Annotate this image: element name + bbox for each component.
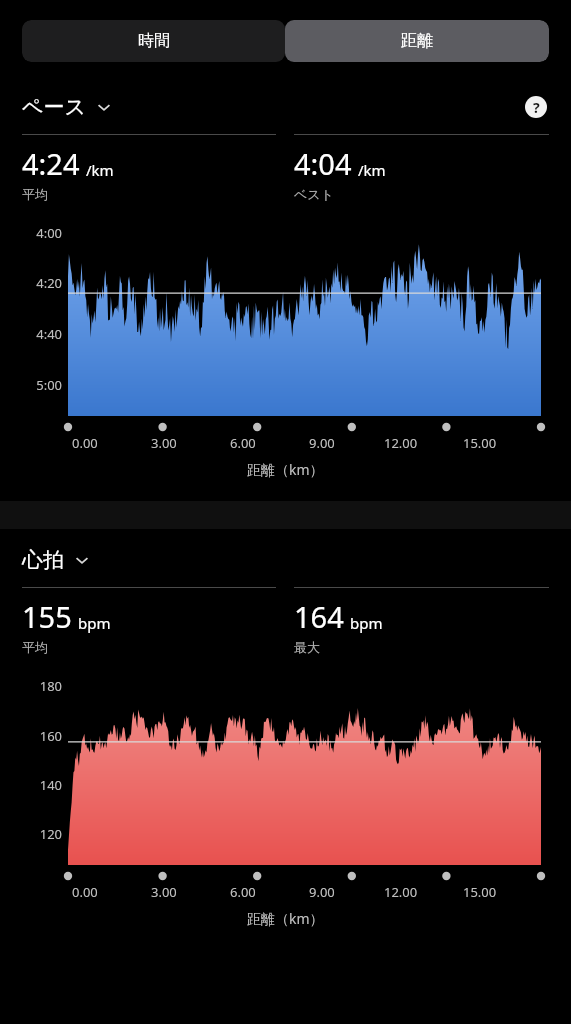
staticText: 15.00 — [463, 883, 497, 901]
staticText: 0.00 — [72, 883, 98, 901]
staticText: 3.00 — [151, 883, 177, 901]
staticText: 9.00 — [309, 883, 335, 901]
staticText: 155 — [22, 597, 72, 636]
button[interactable]: 心拍 — [22, 547, 90, 573]
staticText: 15.00 — [463, 434, 497, 452]
staticText: ベスト — [294, 186, 334, 202]
staticText: ? — [533, 98, 540, 117]
staticText: 12.00 — [384, 434, 418, 452]
staticText: ペース — [22, 94, 86, 120]
staticText: 4:40 — [36, 325, 62, 343]
staticText: 4:20 — [36, 274, 62, 292]
staticText: 9.00 — [309, 434, 335, 452]
staticText: 160 — [39, 727, 62, 745]
button[interactable]: 距離 — [285, 20, 549, 62]
staticText: 120 — [39, 825, 62, 843]
staticText: 180 — [39, 677, 62, 695]
staticText: 4:24 — [22, 144, 80, 183]
staticText: 距離（km） — [247, 460, 324, 479]
staticText: 時間 — [138, 31, 170, 51]
button[interactable]: 時間 — [22, 20, 285, 62]
staticText: 4:00 — [36, 224, 62, 242]
staticText: 164 — [294, 597, 344, 636]
staticText: 心拍 — [22, 547, 64, 573]
staticText: bpm — [78, 613, 111, 633]
staticText: 6.00 — [230, 434, 256, 452]
staticText: 6.00 — [230, 883, 256, 901]
button[interactable]: ペース — [22, 94, 112, 120]
staticText: /km — [86, 160, 114, 180]
staticText: 4:04 — [294, 144, 352, 183]
staticText: 平均 — [22, 639, 48, 655]
staticText: 5:00 — [36, 376, 62, 394]
staticText: 距離 — [401, 31, 433, 51]
button[interactable]: ヘルプ — [523, 94, 549, 120]
staticText: /km — [358, 160, 386, 180]
staticText: bpm — [350, 613, 383, 633]
staticText: 140 — [39, 776, 62, 794]
staticText: 3.00 — [151, 434, 177, 452]
staticText: 0.00 — [72, 434, 98, 452]
staticText: 平均 — [22, 186, 48, 202]
staticText: 距離（km） — [247, 909, 324, 928]
staticText: 12.00 — [384, 883, 418, 901]
staticText: 最大 — [294, 639, 320, 655]
